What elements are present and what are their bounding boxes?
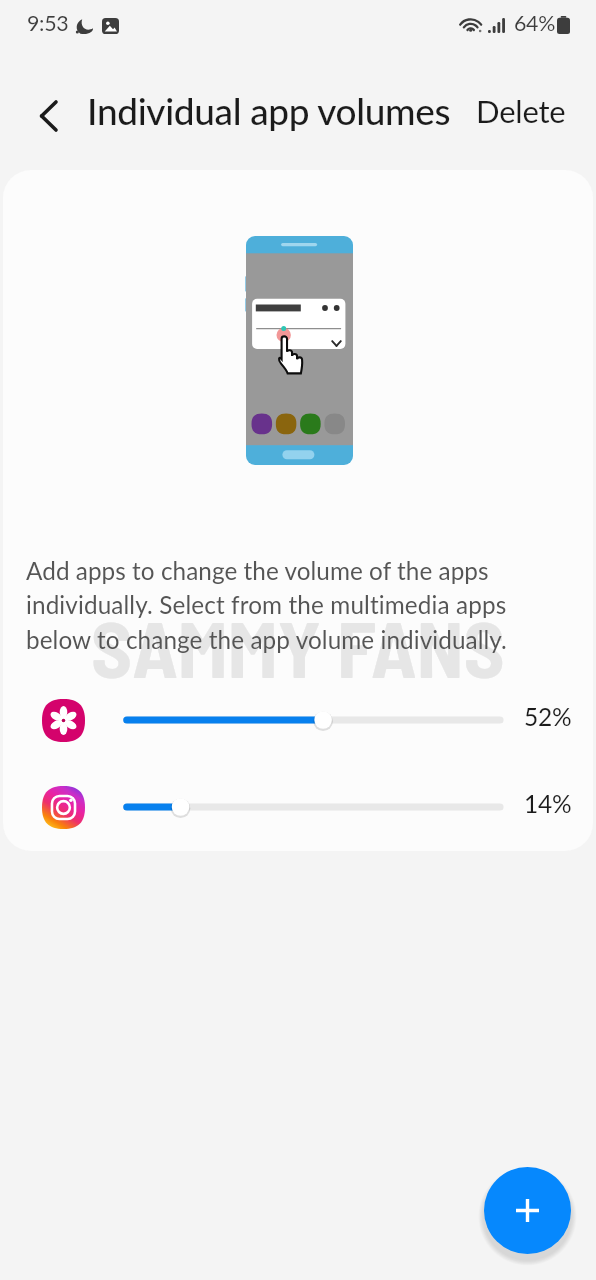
button[interactable]: Add app <box>484 1167 571 1254</box>
staticText: individually. Select from the multimedia… <box>26 590 507 619</box>
staticText: 9:53 <box>27 10 69 36</box>
staticText: SAMMY FANS <box>91 599 505 694</box>
staticText: 52% <box>524 702 572 731</box>
staticText: Individual app volumes <box>87 89 451 133</box>
staticText: below to change the app volume individua… <box>26 625 507 654</box>
button[interactable]: Delete <box>468 92 572 138</box>
staticText: 64% <box>514 10 556 36</box>
staticText: 14% <box>524 789 572 818</box>
button[interactable]: 52% <box>3 690 593 750</box>
button[interactable]: Navigate up <box>26 94 70 138</box>
staticText: Delete <box>476 92 566 129</box>
staticText: Add apps to change the volume of the app… <box>26 556 489 585</box>
button[interactable]: 14% <box>3 777 593 837</box>
